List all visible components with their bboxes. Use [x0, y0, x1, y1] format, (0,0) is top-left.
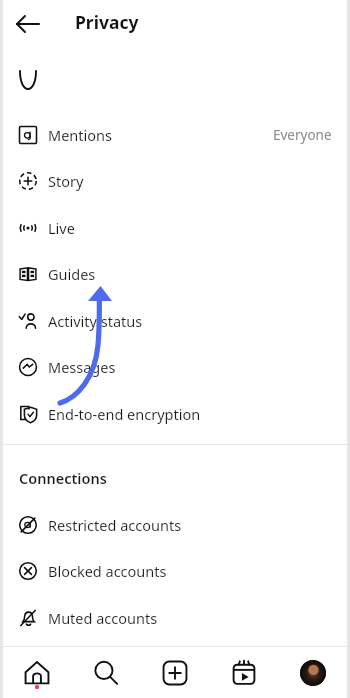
staticText: Mentions [48, 125, 112, 145]
button[interactable]: Activity status [3, 297, 347, 344]
staticText: Live [48, 218, 75, 238]
button[interactable]: Story [3, 157, 347, 204]
button[interactable]: Back [13, 9, 43, 39]
button[interactable]: End-to-end encryption [3, 390, 347, 437]
staticText: Accounts you follow [48, 654, 184, 674]
staticText: Story [48, 171, 84, 191]
button[interactable]: Profile [287, 647, 339, 698]
staticText: Blocked accounts [48, 561, 167, 581]
staticText: Activity status [48, 311, 143, 331]
button[interactable]: Accounts you follow [3, 640, 347, 687]
button[interactable]: Mentions [3, 111, 347, 158]
button[interactable]: Create [149, 647, 201, 698]
staticText: Restricted accounts [48, 515, 182, 535]
button[interactable]: Live [3, 204, 347, 251]
staticText: End-to-end encryption [48, 404, 201, 424]
staticText: Connections [19, 468, 107, 488]
button[interactable]: Blocked accounts [3, 547, 347, 594]
staticText: Everyone [273, 126, 332, 144]
staticText: Privacy [75, 10, 139, 34]
button[interactable]: Home [11, 647, 63, 698]
button[interactable]: Search [80, 647, 132, 698]
button[interactable]: Restricted accounts [3, 501, 347, 548]
staticText: Messages [48, 357, 116, 377]
button[interactable]: Muted accounts [3, 594, 347, 641]
staticText: Muted accounts [48, 608, 158, 628]
button[interactable]: Reels [218, 647, 270, 698]
button[interactable]: Messages [3, 343, 347, 390]
staticText: Guides [48, 264, 96, 284]
button[interactable]: Guides [3, 250, 347, 297]
